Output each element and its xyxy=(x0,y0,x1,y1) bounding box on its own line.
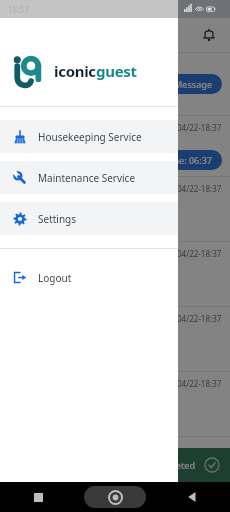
staticText: Completed xyxy=(148,459,196,471)
button[interactable]: Recent apps xyxy=(0,482,76,512)
staticText: 04/22-18:37 xyxy=(177,378,222,389)
button[interactable]: Back xyxy=(153,482,230,512)
staticText: Logout xyxy=(38,271,72,285)
staticText: 04/22-18:37 xyxy=(177,183,222,194)
button[interactable]: Time: 06:37 xyxy=(154,150,222,170)
button[interactable]: 04/22-18:37 xyxy=(0,307,230,371)
button[interactable]: Notifications xyxy=(196,22,222,48)
staticText: Settings xyxy=(38,212,77,226)
staticText: 04/22-18:37 xyxy=(177,122,222,133)
staticText: Housekeeping Service xyxy=(38,130,142,144)
button[interactable]: Home xyxy=(76,482,153,512)
staticText: Message xyxy=(174,78,213,90)
button[interactable]: 04/22-18:37 xyxy=(0,116,230,176)
staticText: guest xyxy=(96,61,137,81)
button[interactable]: 04/22-18:37 xyxy=(0,177,230,241)
button[interactable]: Logout xyxy=(0,262,178,292)
staticText: 18:37 xyxy=(8,4,29,15)
button[interactable]: Message xyxy=(165,74,222,94)
button[interactable]: Confirm xyxy=(204,457,220,473)
staticText: iconic xyxy=(54,61,96,81)
staticText: 04/22-18:37 xyxy=(177,313,222,324)
button[interactable]: Settings xyxy=(0,202,178,235)
button[interactable]: 04/22-18:37 xyxy=(0,372,230,436)
button[interactable]: 04/22-18:37 xyxy=(0,242,230,306)
staticText: Maintenance Service xyxy=(38,171,136,185)
staticText: Time: 06:37 xyxy=(163,154,213,166)
button[interactable]: Maintenance Service xyxy=(0,161,178,194)
button[interactable]: Close xyxy=(118,74,160,94)
button[interactable]: Housekeeping Service xyxy=(0,120,178,153)
staticText: 04/22-18:37 xyxy=(177,248,222,259)
